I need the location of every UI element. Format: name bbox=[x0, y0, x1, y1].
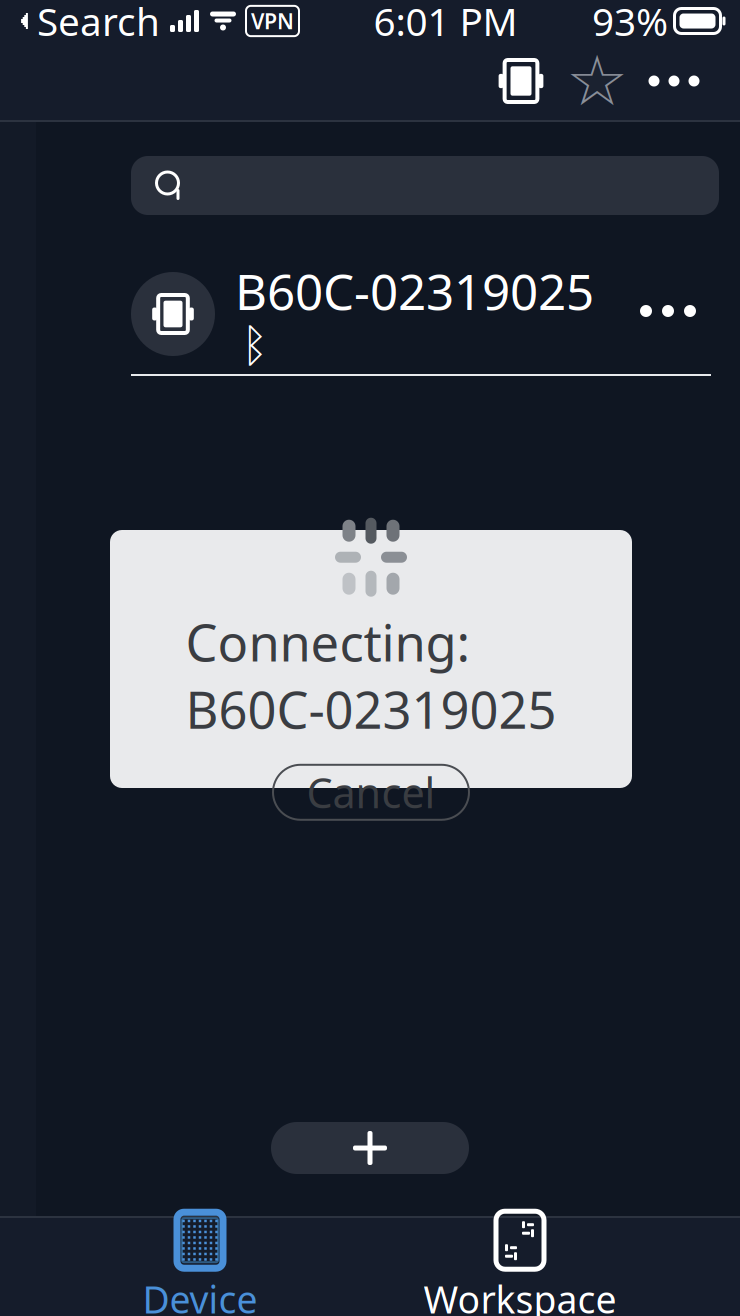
staticText: ★ bbox=[566, 42, 628, 120]
staticText: ☆ bbox=[566, 42, 628, 120]
staticText: Cancel bbox=[306, 765, 435, 820]
staticText: ᛒ bbox=[241, 326, 268, 370]
staticText: VPN bbox=[251, 7, 294, 35]
staticText: Search bbox=[27, 0, 160, 47]
button[interactable]: Device bbox=[100, 1219, 300, 1315]
button[interactable]: Favorites bbox=[560, 48, 634, 114]
button[interactable]: Device view bbox=[482, 48, 560, 114]
button[interactable]: Workspace bbox=[400, 1219, 640, 1315]
staticText: Connecting: B60C-02319025 bbox=[185, 608, 556, 743]
button[interactable]: Cancel bbox=[273, 765, 469, 820]
button[interactable]: B60C-02319025 bbox=[131, 258, 720, 376]
staticText: Device bbox=[142, 1274, 257, 1316]
staticText: Workspace bbox=[423, 1274, 616, 1316]
button[interactable]: More options bbox=[634, 48, 714, 114]
staticText: B60C-02319025 bbox=[235, 258, 594, 324]
button[interactable]: Search bbox=[131, 156, 719, 215]
button[interactable]: Add device bbox=[271, 1122, 469, 1174]
staticText: 93% bbox=[592, 0, 668, 47]
staticText: 6:01 PM bbox=[373, 0, 517, 47]
